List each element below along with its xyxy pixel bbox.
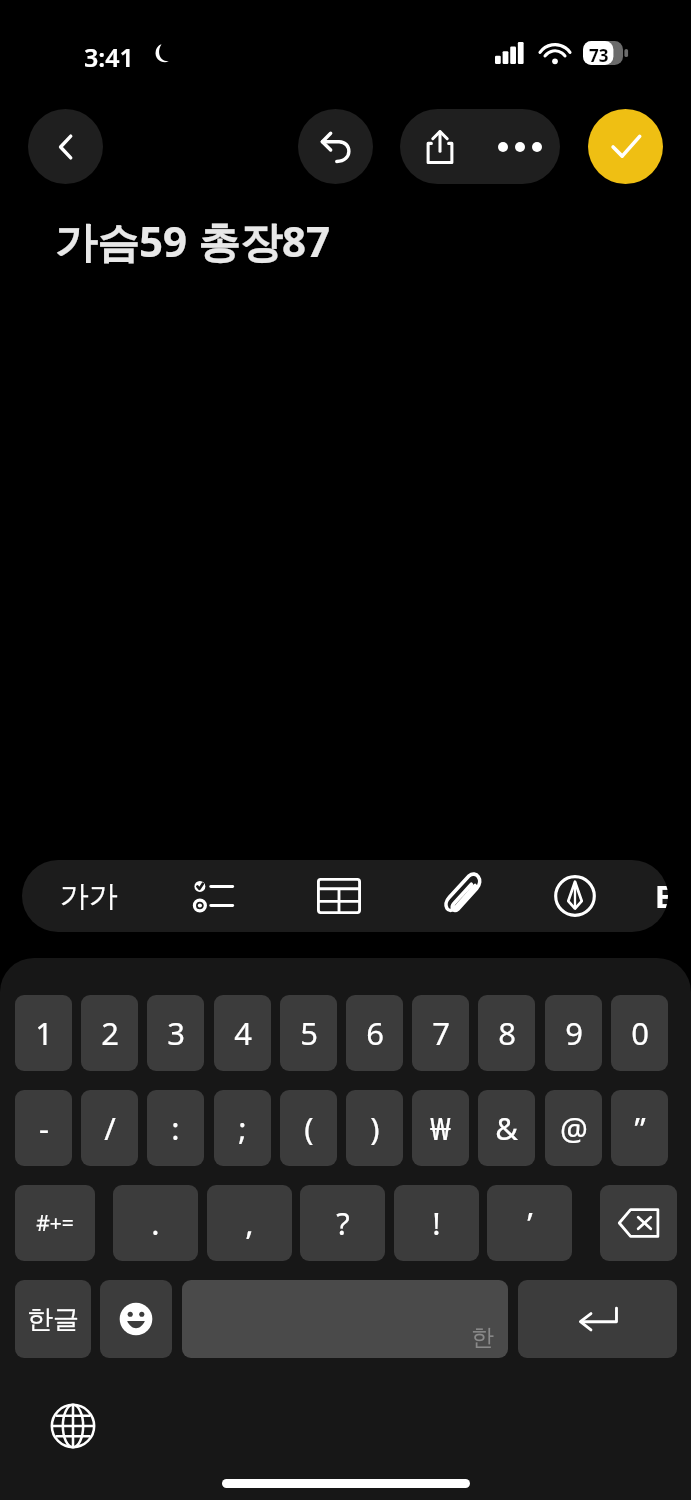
button[interactable]: 3 [147, 995, 204, 1071]
staticText: 가가 [60, 878, 118, 915]
staticText: 한 [471, 1323, 494, 1352]
button[interactable]: 5 [280, 995, 337, 1071]
staticText: 73 [589, 44, 609, 67]
button[interactable]: ’ [487, 1185, 572, 1261]
staticText: ’ [527, 1202, 533, 1244]
staticText: 2 [101, 1012, 119, 1054]
staticText: 3 [167, 1012, 185, 1054]
staticText: ₩ [430, 1107, 451, 1149]
staticText: & [495, 1107, 518, 1149]
button[interactable]: ! [394, 1185, 479, 1261]
staticText: 0 [631, 1012, 649, 1054]
button[interactable]: , [207, 1185, 292, 1261]
button[interactable]: Done [588, 109, 663, 184]
staticText: 3:41 [84, 40, 134, 74]
button[interactable]: 2 [81, 995, 138, 1071]
staticText: 1 [35, 1012, 53, 1054]
staticText: ! [432, 1202, 441, 1244]
button[interactable]: ? [300, 1185, 385, 1261]
staticText: 가슴59 총장87 [55, 212, 331, 269]
staticText: ” [634, 1107, 646, 1149]
button[interactable]: 0 [611, 995, 668, 1071]
button[interactable]: 1 [15, 995, 72, 1071]
button[interactable]: 가가 [34, 860, 144, 932]
button[interactable]: . [113, 1185, 198, 1261]
staticText: ) [370, 1107, 380, 1149]
button[interactable]: 9 [545, 995, 602, 1071]
button[interactable]: 8 [478, 995, 535, 1071]
button[interactable]: / [81, 1090, 138, 1166]
staticText: #+= [36, 1209, 74, 1238]
staticText: . [151, 1202, 160, 1244]
staticText: 9 [565, 1012, 583, 1054]
button[interactable]: Checklist [160, 860, 270, 932]
staticText: ? [336, 1202, 350, 1244]
staticText: ; [238, 1107, 247, 1149]
button[interactable]: ” [611, 1090, 668, 1166]
staticText: - [39, 1107, 49, 1149]
button[interactable]: #+= [15, 1185, 95, 1261]
button[interactable]: Table [284, 860, 394, 932]
button[interactable]: @ [545, 1090, 602, 1166]
staticText: 7 [432, 1012, 450, 1054]
staticText: 한글 [27, 1303, 79, 1336]
staticText: @ [560, 1107, 588, 1149]
staticText: , [245, 1202, 254, 1244]
button[interactable]: : [147, 1090, 204, 1166]
button[interactable]: More options [480, 109, 560, 184]
button[interactable]: - [15, 1090, 72, 1166]
staticText: 8 [498, 1012, 516, 1054]
button[interactable]: Share [400, 109, 480, 184]
button[interactable]: Change keyboard language [47, 1400, 99, 1452]
button[interactable]: ) [346, 1090, 403, 1166]
staticText: / [104, 1107, 116, 1149]
button[interactable]: & [478, 1090, 535, 1166]
button[interactable]: Backspace [600, 1185, 677, 1261]
button[interactable]: 6 [346, 995, 403, 1071]
staticText: 4 [234, 1012, 252, 1054]
button[interactable]: Markup [520, 860, 630, 932]
staticText: 5 [300, 1012, 318, 1054]
button[interactable]: 4 [214, 995, 271, 1071]
button[interactable]: ₩ [412, 1090, 469, 1166]
staticText: ( [304, 1107, 314, 1149]
button[interactable]: ; [214, 1090, 271, 1166]
staticText: : [171, 1107, 180, 1149]
button[interactable]: 한글 [15, 1280, 91, 1358]
button[interactable]: Attach [408, 860, 518, 932]
staticText: 6 [366, 1012, 384, 1054]
button[interactable]: 7 [412, 995, 469, 1071]
button[interactable]: Back [28, 109, 103, 184]
button[interactable]: ( [280, 1090, 337, 1166]
button[interactable]: Undo [298, 109, 373, 184]
staticText: E [655, 876, 668, 917]
button[interactable]: Emoji [100, 1280, 172, 1358]
button[interactable]: Return [518, 1280, 677, 1358]
button[interactable]: Space [182, 1280, 508, 1358]
